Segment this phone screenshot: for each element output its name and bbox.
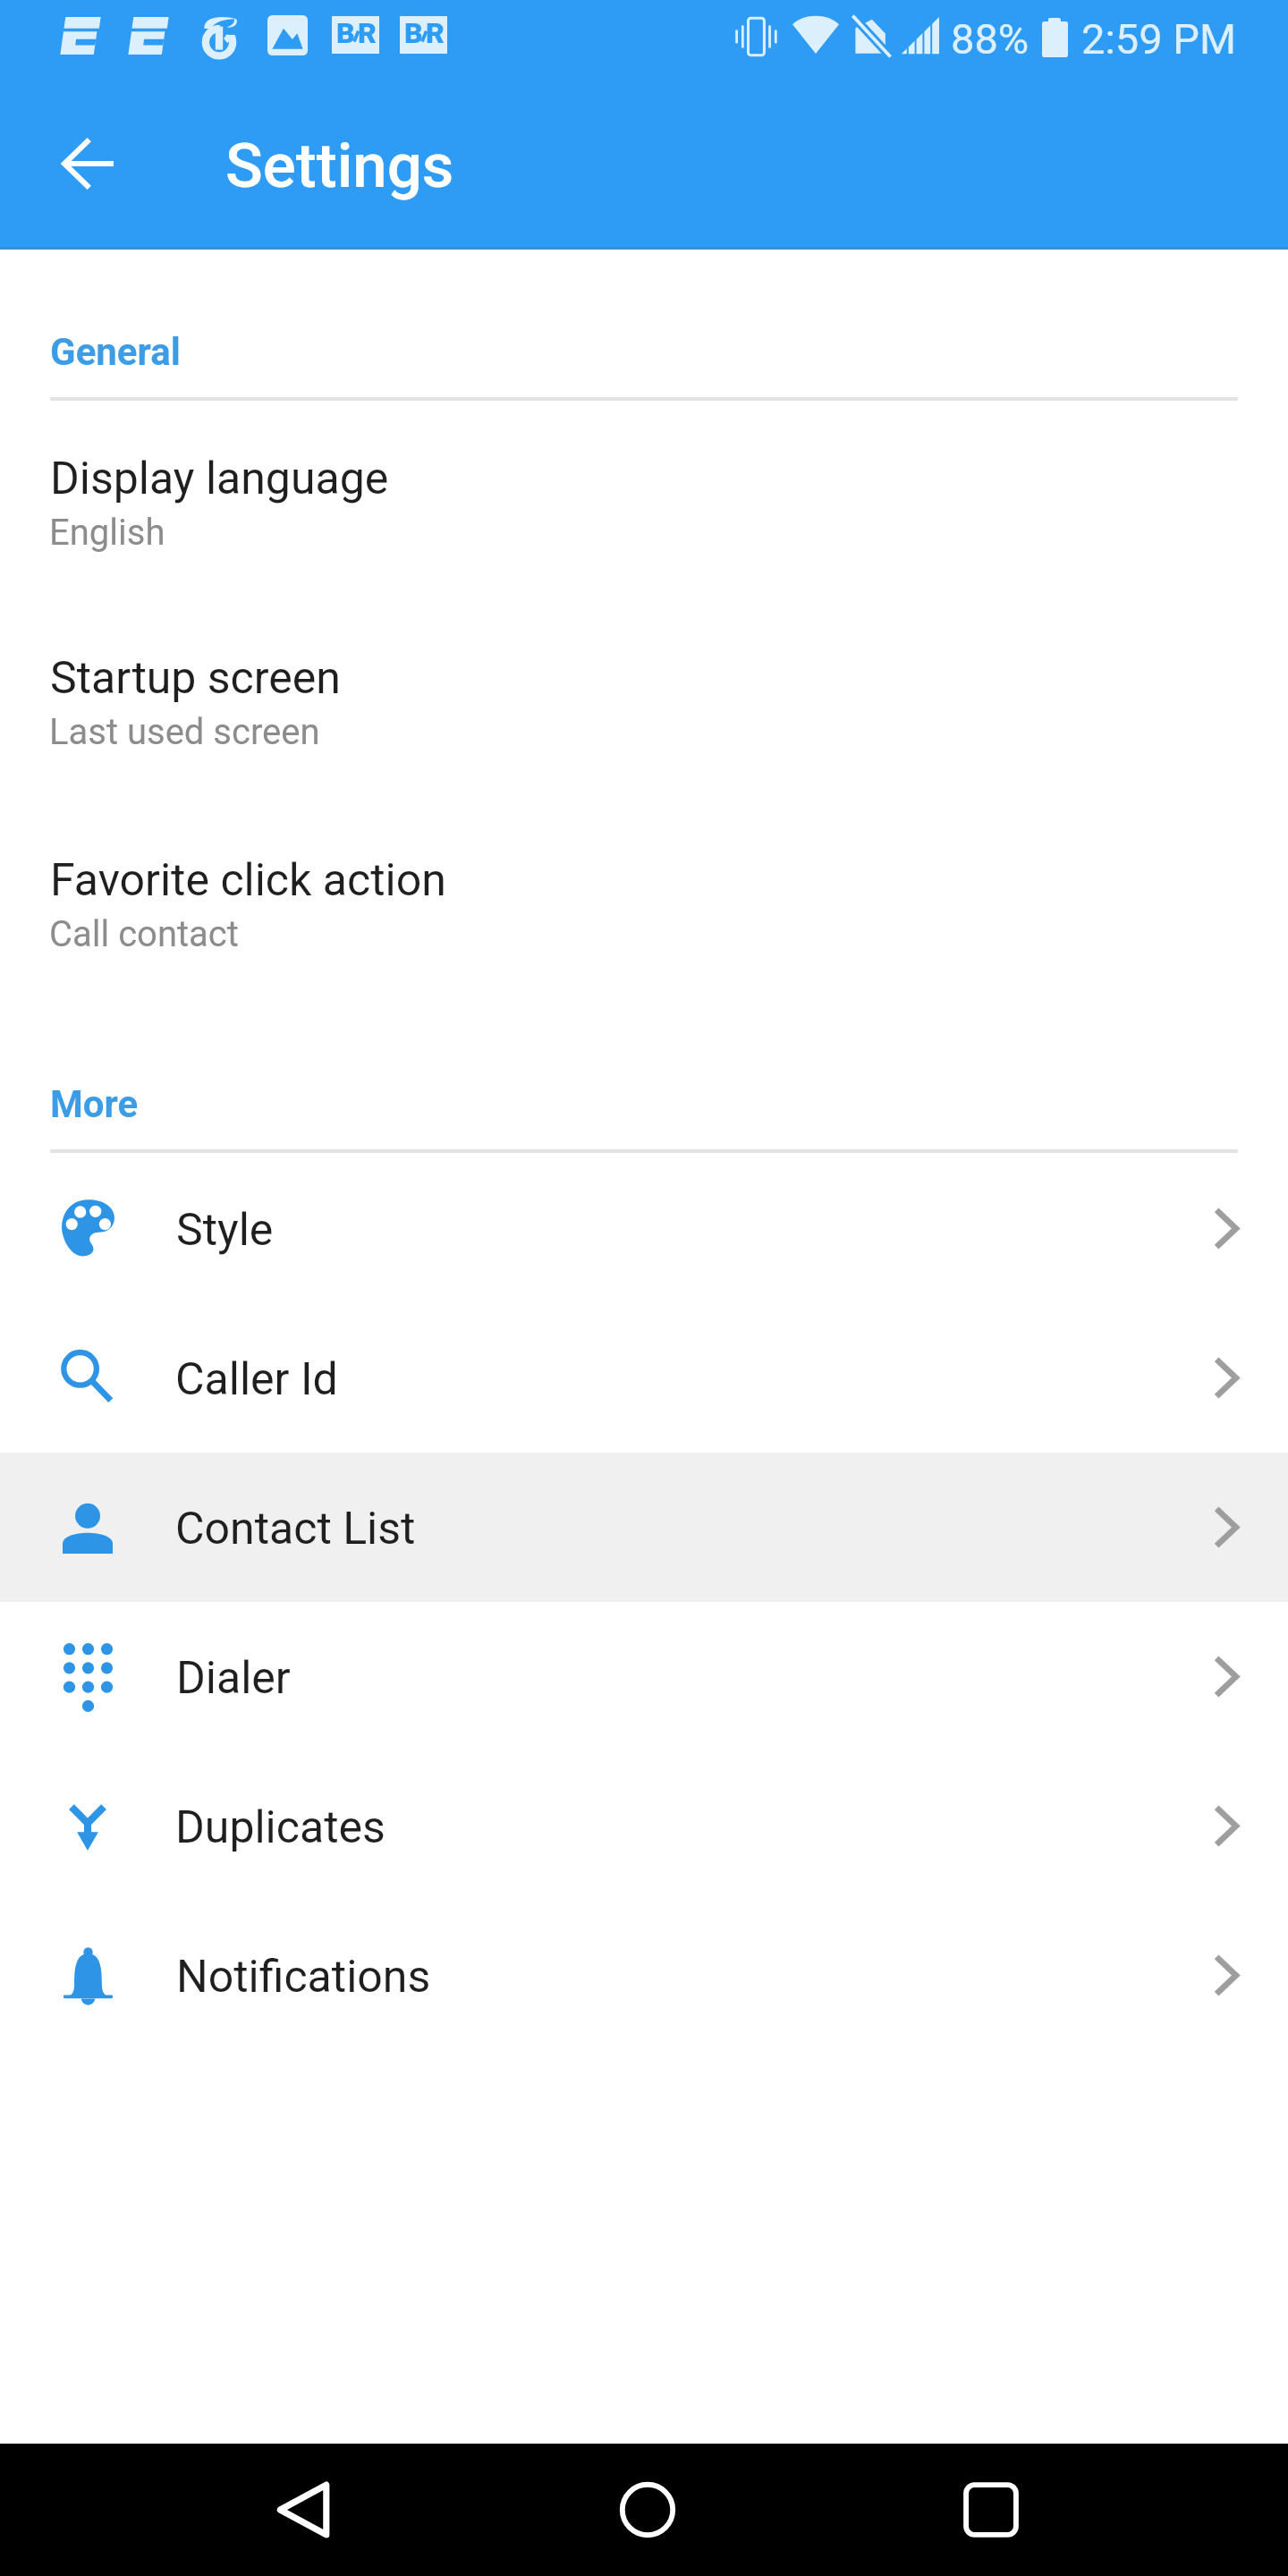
staticText: Notifications [176,1951,431,2004]
staticText: R [426,16,445,50]
button[interactable]: Back [38,114,137,213]
button[interactable]: Dialer [0,1602,1288,1751]
button[interactable]: Favorite click action [0,800,1288,999]
staticText: Display language [50,453,389,505]
staticText: 2:59 PM [1081,14,1236,64]
button[interactable]: Startup screen [0,597,1288,797]
staticText: 88% [951,14,1030,64]
button[interactable]: Back [250,2456,358,2563]
staticText: Startup screen [50,652,341,705]
button[interactable]: Caller Id [0,1303,1288,1453]
staticText: R [358,16,377,50]
staticText: B [336,16,355,50]
button[interactable]: Notifications [0,1901,1288,2050]
staticText: Favorite click action [50,854,446,907]
button[interactable]: Home [594,2456,701,2563]
button[interactable]: Duplicates [0,1751,1288,1901]
staticText: General [50,330,181,374]
staticText: Contact List [175,1503,416,1555]
staticText: B [404,16,423,50]
staticText: Settings [225,130,454,202]
staticText: English [49,512,165,554]
button[interactable]: Contact List [0,1453,1288,1602]
staticText: Dialer [176,1652,291,1705]
button[interactable]: Recent apps [937,2456,1045,2563]
staticText: More [50,1082,139,1126]
button[interactable]: Display language [0,398,1288,597]
button[interactable]: Style [0,1154,1288,1303]
staticText: Last used screen [49,711,320,753]
staticText: Duplicates [175,1801,386,1854]
staticText: Style [176,1204,274,1257]
staticText: Call contact [49,913,239,955]
staticText: Caller Id [175,1353,338,1406]
